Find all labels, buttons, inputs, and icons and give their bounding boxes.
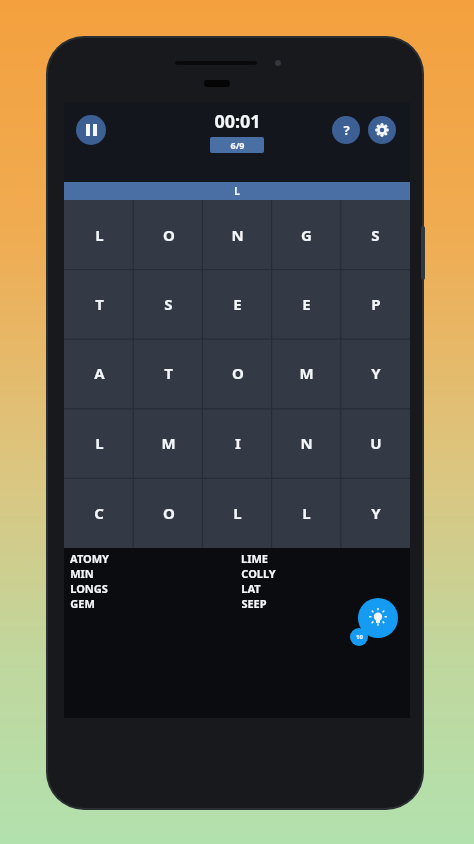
staticText: M bbox=[161, 433, 176, 453]
button[interactable]: U bbox=[341, 408, 410, 478]
button[interactable]: T bbox=[134, 338, 203, 408]
staticText: U bbox=[370, 433, 382, 453]
button[interactable]: Settings bbox=[368, 116, 396, 144]
staticText: E bbox=[302, 294, 311, 314]
button[interactable]: O bbox=[134, 478, 203, 548]
staticText: Y bbox=[371, 503, 381, 523]
button[interactable]: 6/9 bbox=[210, 137, 264, 153]
button[interactable]: S bbox=[134, 269, 203, 338]
button[interactable]: MIN bbox=[70, 566, 94, 581]
staticText: 10 bbox=[356, 633, 363, 641]
button[interactable]: COLLY bbox=[241, 566, 276, 581]
button[interactable]: O bbox=[134, 200, 203, 269]
button[interactable]: Hint bbox=[358, 598, 398, 638]
staticText: M bbox=[299, 363, 314, 383]
staticText: O bbox=[163, 503, 175, 523]
staticText: COLLY bbox=[241, 566, 276, 581]
button[interactable]: G bbox=[272, 200, 341, 269]
staticText: N bbox=[300, 433, 313, 453]
button[interactable]: Y bbox=[341, 478, 410, 548]
button[interactable]: Hints remaining bbox=[350, 628, 368, 646]
staticText: LIME bbox=[241, 551, 268, 566]
staticText: L bbox=[95, 225, 104, 245]
button[interactable]: T bbox=[64, 269, 134, 338]
staticText: N bbox=[231, 225, 244, 245]
button[interactable]: N bbox=[203, 200, 272, 269]
staticText: L bbox=[234, 184, 240, 198]
staticText: Y bbox=[371, 363, 381, 383]
staticText: G bbox=[301, 225, 312, 245]
staticText: SEEP bbox=[241, 596, 267, 611]
button[interactable]: L bbox=[203, 478, 272, 548]
button[interactable]: ATOMY bbox=[70, 551, 109, 566]
staticText: L bbox=[302, 503, 311, 523]
button[interactable]: GEM bbox=[70, 596, 95, 611]
staticText: E bbox=[233, 294, 242, 314]
button[interactable]: Pause bbox=[76, 115, 106, 145]
staticText: MIN bbox=[70, 566, 94, 581]
staticText: P bbox=[371, 294, 381, 314]
button[interactable]: Y bbox=[341, 338, 410, 408]
button[interactable]: SEEP bbox=[241, 596, 267, 611]
staticText: LAT bbox=[241, 581, 261, 596]
staticText: O bbox=[163, 225, 175, 245]
button[interactable]: L bbox=[64, 408, 134, 478]
staticText: C bbox=[94, 503, 104, 523]
staticText: L bbox=[95, 433, 104, 453]
button[interactable]: E bbox=[203, 269, 272, 338]
staticText: 6/9 bbox=[230, 139, 245, 151]
button[interactable]: LIME bbox=[241, 551, 268, 566]
button[interactable]: C bbox=[64, 478, 134, 548]
staticText: T bbox=[95, 294, 104, 314]
staticText: A bbox=[94, 363, 105, 383]
button[interactable]: L bbox=[64, 200, 134, 269]
staticText: 00:01 bbox=[214, 109, 261, 134]
staticText: O bbox=[232, 363, 244, 383]
button[interactable]: I bbox=[203, 408, 272, 478]
staticText: S bbox=[164, 294, 173, 314]
button[interactable]: L bbox=[272, 478, 341, 548]
staticText: GEM bbox=[70, 596, 95, 611]
button[interactable]: Help bbox=[332, 116, 360, 144]
button[interactable]: M bbox=[272, 338, 341, 408]
staticText: S bbox=[371, 225, 380, 245]
button[interactable]: N bbox=[272, 408, 341, 478]
button[interactable]: E bbox=[272, 269, 341, 338]
button[interactable]: A bbox=[64, 338, 134, 408]
button[interactable]: LONGS bbox=[70, 581, 108, 596]
button[interactable]: LAT bbox=[241, 581, 261, 596]
button[interactable]: L bbox=[64, 182, 410, 200]
staticText: I bbox=[235, 433, 241, 453]
staticText: L bbox=[233, 503, 242, 523]
staticText: ? bbox=[343, 121, 350, 139]
button[interactable]: P bbox=[341, 269, 410, 338]
staticText: T bbox=[164, 363, 173, 383]
button[interactable]: M bbox=[134, 408, 203, 478]
button[interactable]: O bbox=[203, 338, 272, 408]
staticText: LONGS bbox=[70, 581, 108, 596]
staticText: ATOMY bbox=[70, 551, 109, 566]
button[interactable]: S bbox=[341, 200, 410, 269]
